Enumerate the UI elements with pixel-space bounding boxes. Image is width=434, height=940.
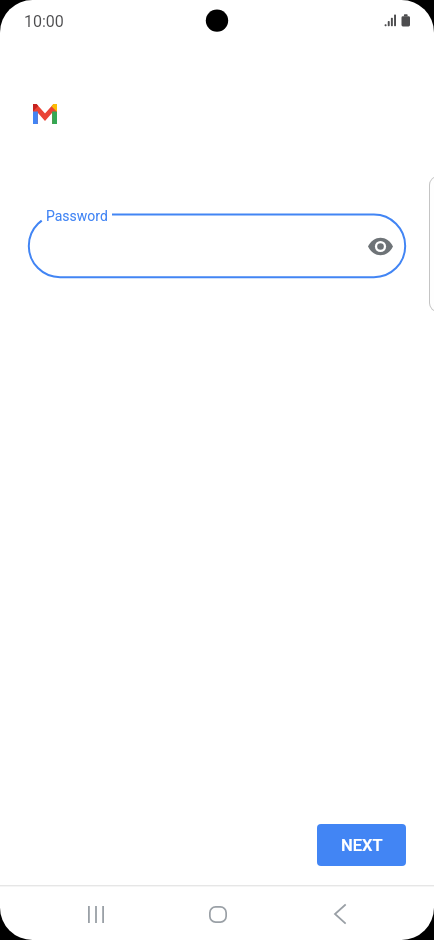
button[interactable]: Home xyxy=(194,890,242,938)
staticText: NEXT xyxy=(341,836,383,855)
button[interactable]: Back xyxy=(316,890,364,938)
button[interactable]: Password text field xyxy=(28,214,406,279)
button[interactable]: NEXT xyxy=(317,824,406,866)
staticText: Password xyxy=(46,208,108,224)
staticText: 10:00 xyxy=(24,12,64,31)
button[interactable]: Show password xyxy=(358,224,402,268)
button[interactable]: Recent apps xyxy=(72,890,120,938)
